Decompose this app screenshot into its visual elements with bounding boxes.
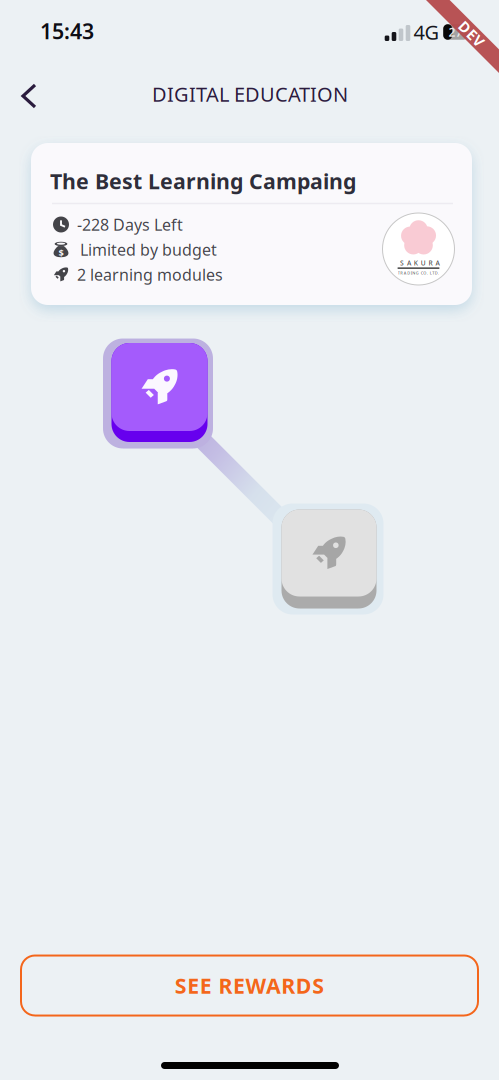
button[interactable]: Back — [6, 70, 54, 122]
staticText: 15:43 — [40, 17, 94, 45]
staticText: -228 Days Left — [77, 214, 183, 235]
staticText: 4G — [413, 19, 439, 45]
staticText: SAKURA — [400, 258, 439, 267]
button[interactable]: Module 1 — [103, 338, 213, 448]
button[interactable]: SEE REWARDS — [21, 955, 478, 1015]
staticText: Limited by budget — [80, 239, 217, 260]
staticText: $ — [58, 247, 63, 259]
staticText: DIGITAL EDUCATION — [152, 81, 348, 107]
staticText: 2 learning modules — [77, 264, 223, 285]
staticText: DEV — [457, 24, 487, 44]
button[interactable]: Module 2 — [272, 503, 383, 614]
staticText: TRADING CO. LTD. — [398, 270, 439, 275]
staticText: 27 — [448, 24, 462, 40]
staticText: SEE REWARDS — [175, 971, 324, 1000]
staticText: The Best Learning Campaing — [50, 167, 356, 195]
